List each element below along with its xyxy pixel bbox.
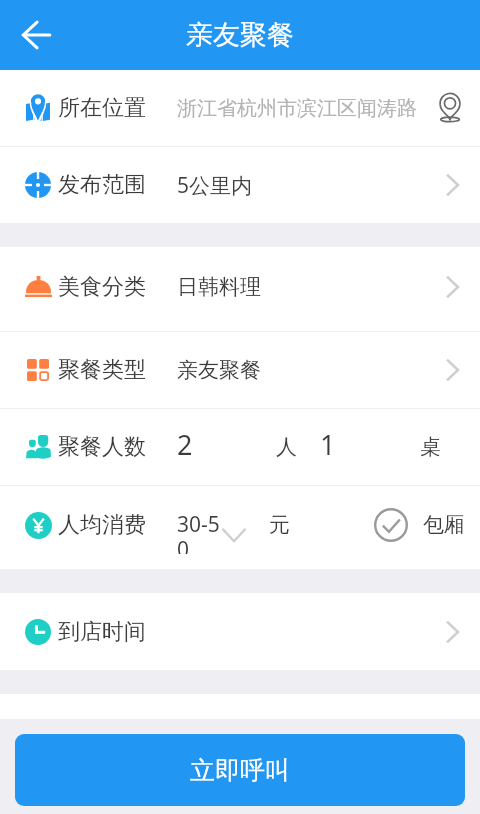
- staticText: 亲友聚餐: [186, 18, 294, 52]
- button[interactable]: 立即呼叫: [15, 734, 465, 806]
- staticText: 人: [276, 434, 297, 460]
- button[interactable]: 更多: [430, 610, 474, 654]
- staticText: 浙江省杭州市滨江区闻涛路: [177, 96, 417, 121]
- button[interactable]: 选择人均消费: [222, 522, 246, 546]
- button[interactable]: 发布范围: [0, 147, 480, 223]
- button[interactable]: 人均消费: [0, 486, 480, 569]
- staticText: 聚餐人数: [58, 433, 146, 461]
- staticText: 1: [320, 426, 336, 463]
- staticText: 桌: [420, 434, 441, 460]
- staticText: 0: [177, 535, 190, 554]
- staticText: 亲友聚餐: [177, 357, 261, 383]
- staticText: 所在位置: [58, 94, 146, 122]
- staticText: 立即呼叫: [190, 755, 290, 786]
- staticText: 元: [269, 512, 290, 538]
- staticText: 2: [177, 426, 193, 463]
- staticText: 5公里内: [177, 171, 253, 200]
- button[interactable]: 聚餐类型: [0, 332, 480, 408]
- button[interactable]: 聚餐人数: [0, 409, 480, 485]
- staticText: 人均消费: [58, 511, 146, 539]
- staticText: 聚餐类型: [58, 356, 146, 384]
- button[interactable]: 更多: [430, 348, 474, 392]
- staticText: 包厢: [423, 512, 465, 538]
- staticText: 到店时间: [58, 618, 146, 646]
- button[interactable]: 更多: [430, 265, 474, 309]
- button[interactable]: 定位: [428, 86, 472, 130]
- staticText: 发布范围: [58, 171, 146, 199]
- staticText: 日韩料理: [177, 274, 261, 300]
- button[interactable]: 包厢: [374, 508, 465, 542]
- button[interactable]: 更多: [430, 163, 474, 207]
- button[interactable]: 美食分类: [0, 247, 480, 331]
- button[interactable]: 返回: [8, 7, 64, 63]
- staticText: 30-5: [177, 510, 220, 539]
- button[interactable]: 到店时间: [0, 593, 480, 670]
- staticText: 美食分类: [58, 273, 146, 301]
- button[interactable]: 所在位置: [0, 70, 480, 146]
